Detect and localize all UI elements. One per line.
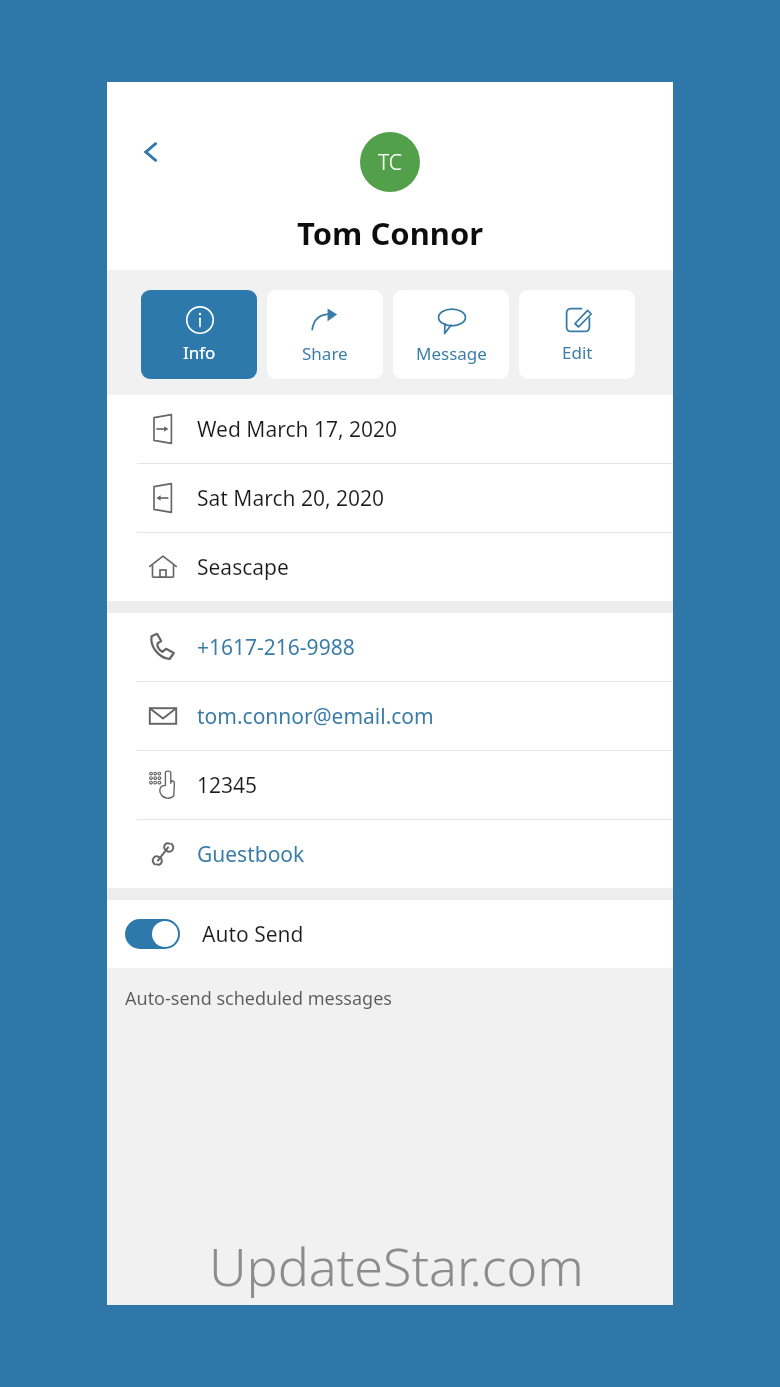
staticText: Share <box>302 342 348 365</box>
button[interactable]: Info <box>141 290 257 379</box>
staticText: UpdateStar.com <box>209 1230 584 1301</box>
staticText: tom.connor@email.com <box>197 702 434 731</box>
button[interactable]: tom.connor@email.com <box>107 682 673 750</box>
staticText: Guestbook <box>197 840 305 869</box>
staticText: Sat March 20, 2020 <box>197 484 385 513</box>
button[interactable]: Edit <box>519 290 635 379</box>
staticText: Wed March 17, 2020 <box>197 415 398 444</box>
staticText: Auto Send <box>202 920 304 949</box>
staticText: Seascape <box>197 553 289 582</box>
staticText: Info <box>183 341 216 364</box>
staticText: TC <box>378 148 402 177</box>
button[interactable]: Message <box>393 290 509 379</box>
staticText: Tom Connor <box>297 212 484 254</box>
staticText: Auto-send scheduled messages <box>125 986 392 1011</box>
button[interactable]: Auto Send <box>107 900 673 968</box>
button[interactable]: Guestbook <box>107 820 673 888</box>
staticText: Edit <box>562 341 593 364</box>
staticText: +1617-216-9988 <box>197 633 355 662</box>
staticText: Message <box>416 342 487 365</box>
staticText: 12345 <box>197 771 258 800</box>
button[interactable]: +1617-216-9988 <box>107 613 673 681</box>
button[interactable]: Share <box>267 290 383 379</box>
button[interactable]: Back <box>125 126 177 178</box>
